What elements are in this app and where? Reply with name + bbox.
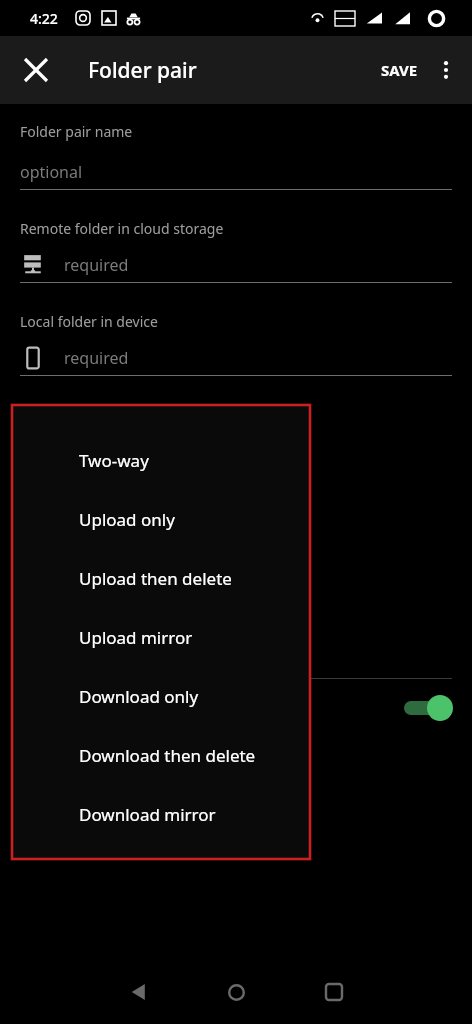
staticText: Two-way [79, 449, 149, 472]
staticText: Remote folder in cloud storage [20, 219, 224, 238]
staticText: Local folder in device [20, 312, 158, 331]
staticText: Download then delete [79, 744, 256, 767]
button[interactable]: Upload only [11, 493, 311, 545]
button[interactable]: required [20, 341, 452, 376]
staticText: SAVE [381, 60, 418, 80]
button[interactable]: Toggle [400, 692, 458, 724]
button[interactable]: Close [10, 44, 62, 96]
staticText: Upload then delete [79, 567, 232, 590]
staticText: Folder pair [88, 56, 197, 85]
button[interactable]: Download then delete [11, 729, 311, 781]
button[interactable]: SAVE [373, 50, 426, 90]
button[interactable]: optional [20, 155, 452, 190]
staticText: Folder pair name [20, 122, 133, 141]
button[interactable]: Upload then delete [11, 552, 311, 604]
button[interactable]: More options [422, 46, 470, 94]
button[interactable]: Recents [306, 964, 362, 1020]
button[interactable]: Two-way [11, 434, 311, 486]
button[interactable]: Back [110, 964, 166, 1020]
staticText: Upload mirror [79, 626, 193, 649]
staticText: required [64, 254, 129, 276]
button[interactable]: Home [208, 964, 264, 1020]
staticText: optional [20, 161, 83, 183]
button[interactable]: Download mirror [11, 788, 311, 840]
button[interactable]: Download only [11, 670, 311, 722]
staticText: Download mirror [79, 803, 216, 826]
button[interactable]: required [20, 248, 452, 283]
staticText: Download only [79, 685, 199, 708]
staticText: required [64, 347, 129, 369]
staticText: Upload only [79, 508, 175, 531]
button[interactable]: Upload mirror [11, 611, 311, 663]
staticText: 4:22 [30, 9, 58, 28]
